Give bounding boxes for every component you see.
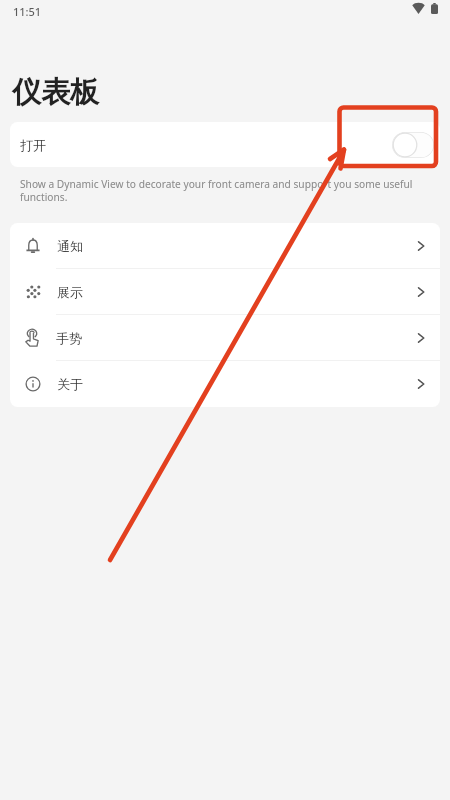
staticText: 仪表板 (12, 74, 99, 111)
button[interactable]: Toggle dynamic view (392, 132, 434, 158)
staticText: Show a Dynamic View to decorate your fro… (20, 177, 418, 204)
button[interactable]: 打开 (10, 122, 440, 167)
staticText: 关于 (57, 376, 83, 392)
staticText: 展示 (57, 284, 83, 300)
button[interactable]: 通知 (10, 223, 440, 269)
staticText: 11:51 (13, 4, 42, 19)
staticText: 通知 (57, 238, 83, 254)
button[interactable]: 展示 (10, 269, 440, 315)
button[interactable]: 手势 (10, 315, 440, 361)
staticText: 打开 (20, 137, 46, 153)
button[interactable]: 关于 (10, 361, 440, 407)
staticText: 手势 (56, 330, 82, 346)
